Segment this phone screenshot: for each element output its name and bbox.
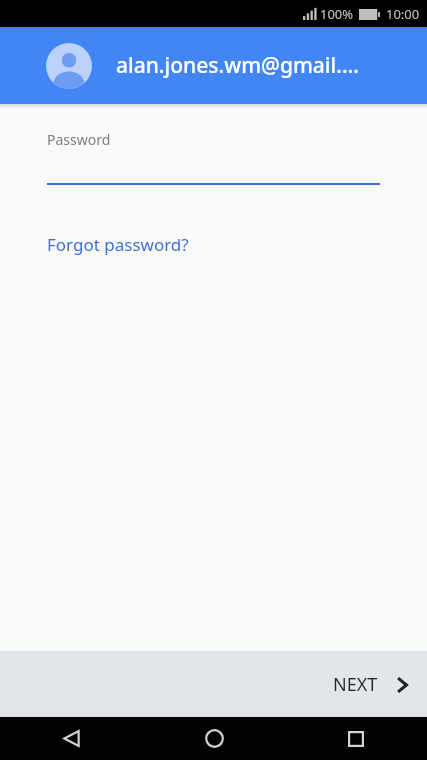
button[interactable]: Forgot password? [47,231,189,258]
button[interactable]: Back [0,717,143,760]
button[interactable]: Password [0,130,427,185]
button[interactable]: Home [143,717,285,760]
button[interactable]: alan.jones.wm@gmail.... [0,27,427,104]
staticText: alan.jones.wm@gmail.... [116,51,360,80]
staticText: NEXT [333,672,378,697]
button[interactable]: Recents [285,717,427,760]
staticText: 100% [320,5,354,23]
staticText: 10:00 [386,5,420,23]
staticText: Password [47,130,111,149]
button[interactable]: NEXT [315,658,427,711]
staticText: Forgot password? [47,233,189,256]
